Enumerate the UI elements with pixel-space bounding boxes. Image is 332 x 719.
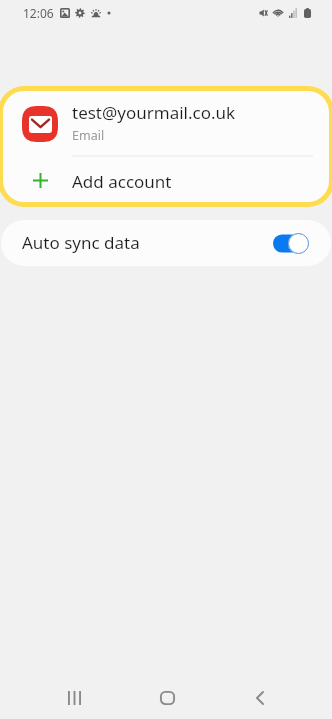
staticText: Email (72, 127, 105, 144)
button[interactable]: test@yourmail.co.uk (0, 86, 332, 154)
staticText: 12:06 (23, 5, 54, 21)
button[interactable]: Auto sync data (0, 220, 332, 266)
button[interactable]: Home (143, 674, 191, 719)
staticText: Add account (72, 170, 172, 193)
button[interactable]: Add account (0, 155, 332, 202)
button[interactable]: Back (236, 674, 284, 719)
button[interactable]: Auto sync data toggle (273, 233, 309, 254)
staticText: test@yourmail.co.uk (72, 101, 236, 124)
button[interactable]: Recents (50, 674, 98, 719)
staticText: Auto sync data (22, 231, 140, 254)
